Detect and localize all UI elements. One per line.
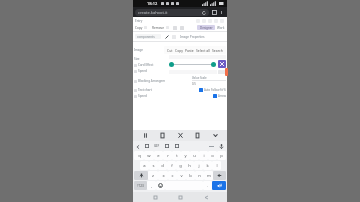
button[interactable]: Copy xyxy=(175,48,183,53)
button[interactable]: g xyxy=(176,161,185,170)
button[interactable]: Back xyxy=(202,193,210,201)
staticText: create.kahoot.it xyxy=(138,10,168,15)
button[interactable]: Paste xyxy=(185,48,194,53)
button[interactable]: k xyxy=(203,161,212,170)
button[interactable]: Enter xyxy=(212,181,226,190)
button[interactable] xyxy=(169,62,174,67)
button[interactable]: GIF xyxy=(154,144,160,148)
button[interactable]: t xyxy=(172,151,181,160)
button[interactable]: s xyxy=(149,161,158,170)
staticText: Blocking Arrangem xyxy=(138,79,166,83)
staticText: Arrow xyxy=(218,94,226,98)
staticText: u xyxy=(193,153,196,159)
staticText: , xyxy=(151,183,153,188)
button[interactable]: Translate xyxy=(174,143,180,149)
button[interactable]: n xyxy=(195,171,204,180)
button[interactable]: c xyxy=(168,171,177,180)
button[interactable]: o xyxy=(208,151,217,160)
staticText: Card Effect xyxy=(138,63,154,67)
staticText: l xyxy=(216,163,218,169)
button[interactable] xyxy=(222,70,226,74)
button[interactable]: f xyxy=(167,161,176,170)
staticText: v xyxy=(180,173,183,179)
button[interactable]: u xyxy=(190,151,199,160)
button[interactable]: Settings xyxy=(164,143,170,149)
button[interactable]: w xyxy=(144,151,154,160)
button[interactable]: Tabs xyxy=(211,9,218,16)
staticText: f xyxy=(171,163,173,169)
staticText: Designer xyxy=(200,26,213,30)
button[interactable]: e xyxy=(154,151,163,160)
staticText: components xyxy=(137,35,155,39)
button[interactable]: q xyxy=(134,151,144,160)
button[interactable]: Remove xyxy=(152,26,165,30)
button[interactable]: Colour swatch xyxy=(218,60,226,68)
button[interactable]: z xyxy=(148,171,158,180)
button[interactable]: b xyxy=(186,171,195,180)
button[interactable]: , xyxy=(147,181,156,190)
button[interactable]: h xyxy=(185,161,194,170)
button[interactable]: r xyxy=(163,151,172,160)
button[interactable]: Backspace xyxy=(213,171,226,180)
staticText: h xyxy=(188,163,191,169)
button[interactable]: i xyxy=(199,151,208,160)
button[interactable]: More options xyxy=(218,9,225,16)
button[interactable]: Collapse xyxy=(210,130,221,141)
button[interactable]: Search xyxy=(212,48,223,53)
staticText: r xyxy=(167,153,169,159)
button[interactable]: Home xyxy=(176,193,184,201)
button[interactable]: Pause xyxy=(140,130,151,141)
button[interactable]: components xyxy=(135,34,161,39)
button[interactable]: m xyxy=(204,171,213,180)
staticText: q xyxy=(138,153,141,159)
staticText: k xyxy=(206,163,209,169)
button[interactable]: . xyxy=(203,181,212,190)
staticText: 0.5 xyxy=(192,82,196,86)
button[interactable]: Emoji xyxy=(156,181,165,190)
staticText: Auto Follow fit % xyxy=(204,88,226,92)
button[interactable]: x xyxy=(158,171,168,180)
staticText: e xyxy=(157,153,160,159)
button[interactable]: Cut xyxy=(167,48,173,53)
staticText: Value Scale xyxy=(192,76,207,80)
button[interactable]: y xyxy=(181,151,190,160)
button[interactable]: a xyxy=(140,161,149,170)
button[interactable]: j xyxy=(194,161,203,170)
button[interactable]: Voice input xyxy=(218,143,225,150)
button[interactable]: Copy xyxy=(157,130,168,141)
button[interactable]: Select all xyxy=(196,48,210,53)
staticText: Image Properties xyxy=(180,35,205,39)
button[interactable]: Copy xyxy=(135,26,143,30)
staticText: . xyxy=(207,183,209,188)
staticText: s xyxy=(152,163,155,169)
button[interactable]: create.kahoot.it xyxy=(135,9,209,16)
button[interactable]: p xyxy=(217,151,226,160)
staticText: c xyxy=(171,173,174,179)
button[interactable]: Back xyxy=(134,143,141,150)
button[interactable]: Shift xyxy=(134,171,148,180)
button[interactable]: Paste xyxy=(192,130,203,141)
button[interactable]: ?123 xyxy=(134,181,147,190)
button[interactable]: v xyxy=(177,171,186,180)
button[interactable]: Designer xyxy=(197,25,215,30)
button[interactable]: Recents xyxy=(151,193,159,201)
staticText: 18:12 xyxy=(147,1,158,6)
button[interactable]: Cut xyxy=(175,130,186,141)
button[interactable]: d xyxy=(158,161,167,170)
button[interactable]: l xyxy=(212,161,221,170)
button[interactable]: Stickers xyxy=(144,143,150,149)
button[interactable]: Work xyxy=(217,26,225,30)
button[interactable] xyxy=(211,62,216,67)
staticText: ?123 xyxy=(137,184,144,188)
